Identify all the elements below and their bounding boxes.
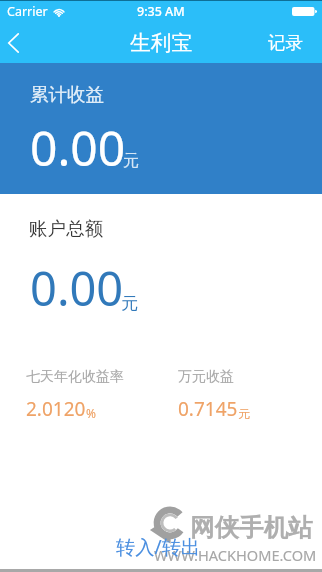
button[interactable]: Back (0, 22, 26, 63)
staticText: 0.00 (30, 115, 126, 180)
staticText: 元 (121, 293, 138, 314)
staticText: 网侠手机站 (190, 512, 313, 543)
staticText: Carrier (7, 3, 48, 20)
staticText: 元 (238, 406, 250, 421)
staticText: WWW.HACKHOME.COM (154, 545, 317, 565)
button[interactable]: 记录 (254, 22, 322, 63)
staticText: 账户总额 (29, 217, 103, 240)
staticText: 累计收益 (30, 83, 104, 106)
button[interactable]: 转入/转出 (107, 528, 210, 564)
staticText: % (86, 405, 96, 421)
staticText: 元 (123, 151, 139, 171)
staticText: 转入/转出 (116, 533, 201, 559)
staticText: 万元收益 (178, 368, 234, 386)
staticText: 0.7145 (178, 396, 238, 422)
staticText: 七天年化收益率 (26, 368, 124, 386)
staticText: 生利宝 (130, 30, 193, 56)
staticText: 2.0120 (26, 396, 86, 422)
staticText: 9:35 AM (137, 3, 185, 20)
staticText: 0.00 (30, 256, 124, 320)
staticText: 记录 (268, 32, 303, 54)
